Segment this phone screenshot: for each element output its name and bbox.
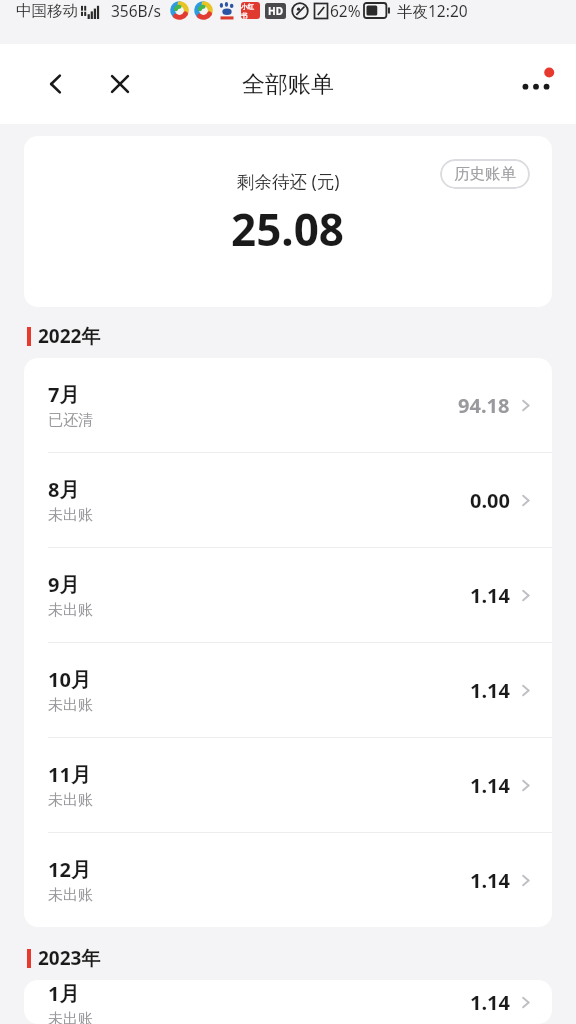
staticText: 94.18 bbox=[458, 392, 510, 419]
staticText: 未出账 bbox=[48, 1010, 93, 1024]
staticText: 未出账 bbox=[48, 791, 93, 810]
staticText: 11月 bbox=[48, 761, 91, 788]
staticText: 0.00 bbox=[470, 487, 510, 514]
button[interactable]: More options bbox=[510, 58, 562, 110]
staticText: 25.08 bbox=[231, 199, 345, 259]
staticText: 7月 bbox=[48, 381, 80, 408]
staticText: 小红书 bbox=[241, 3, 260, 19]
staticText: 1月 bbox=[48, 980, 80, 1007]
button[interactable]: Close bbox=[98, 62, 142, 106]
staticText: 1.14 bbox=[470, 677, 510, 704]
staticText: 未出账 bbox=[48, 601, 93, 620]
staticText: 10月 bbox=[48, 666, 91, 693]
staticText: 剩余待还 (元) bbox=[237, 169, 340, 193]
staticText: 1.14 bbox=[470, 989, 510, 1016]
staticText: 已还清 bbox=[48, 411, 93, 430]
button[interactable]: 12月 bbox=[24, 833, 552, 927]
staticText: 未出账 bbox=[48, 696, 93, 715]
staticText: 356B/s bbox=[111, 0, 161, 21]
staticText: 2022年 bbox=[38, 323, 101, 349]
staticText: 中国移动 bbox=[16, 1, 78, 21]
button[interactable]: 8月 bbox=[24, 453, 552, 547]
button[interactable]: 11月 bbox=[24, 738, 552, 832]
button[interactable]: 10月 bbox=[24, 643, 552, 737]
button[interactable]: 1月 bbox=[24, 980, 552, 1024]
staticText: 12月 bbox=[48, 856, 91, 883]
staticText: 9月 bbox=[48, 571, 80, 598]
staticText: 全部账单 bbox=[242, 70, 334, 99]
staticText: 2023年 bbox=[38, 945, 101, 971]
staticText: 半夜12:20 bbox=[397, 0, 468, 21]
staticText: 历史账单 bbox=[454, 164, 516, 184]
staticText: 1.14 bbox=[470, 867, 510, 894]
button[interactable]: 7月 bbox=[24, 358, 552, 452]
staticText: 62% bbox=[330, 0, 361, 21]
staticText: 未出账 bbox=[48, 506, 93, 525]
staticText: 1.14 bbox=[470, 772, 510, 799]
staticText: 未出账 bbox=[48, 886, 93, 905]
staticText: 1.14 bbox=[470, 582, 510, 609]
button[interactable]: 9月 bbox=[24, 548, 552, 642]
button[interactable]: Back bbox=[34, 62, 78, 106]
staticText: 8月 bbox=[48, 476, 80, 503]
staticText: HD bbox=[268, 4, 283, 18]
button[interactable]: 历史账单 bbox=[440, 159, 530, 189]
